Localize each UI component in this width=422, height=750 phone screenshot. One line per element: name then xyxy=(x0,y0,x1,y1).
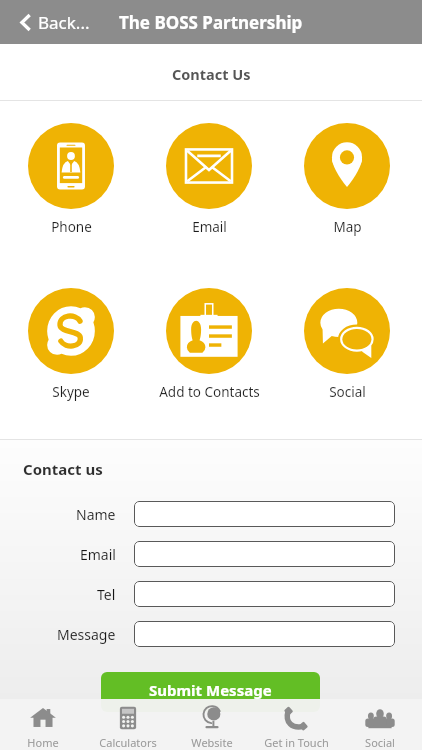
button[interactable]: Email xyxy=(166,123,252,236)
button[interactable]: Social xyxy=(304,288,390,401)
button[interactable] xyxy=(134,541,395,567)
staticText: Message xyxy=(57,625,116,644)
button[interactable]: Map xyxy=(304,123,390,236)
staticText: Social xyxy=(365,735,395,750)
staticText: The BOSS Partnership xyxy=(119,11,303,34)
staticText: Add to Contacts xyxy=(159,383,260,401)
staticText: Social xyxy=(329,383,366,401)
staticText: Email xyxy=(80,545,116,564)
button[interactable]: Home xyxy=(0,699,85,750)
staticText: Map xyxy=(333,218,362,236)
staticText: Contact Us xyxy=(172,64,251,84)
other: Back xyxy=(20,14,31,31)
staticText: Tel xyxy=(97,585,116,604)
button[interactable]: Calculators xyxy=(85,699,170,750)
staticText: Skype xyxy=(52,383,90,401)
button[interactable]: Social xyxy=(338,699,422,750)
staticText: Back... xyxy=(38,11,90,34)
button[interactable]: Add to Contacts xyxy=(166,288,252,401)
button[interactable]: Back xyxy=(0,0,100,44)
button[interactable] xyxy=(134,501,395,527)
button[interactable]: Skype xyxy=(28,288,114,401)
staticText: Phone xyxy=(51,218,92,236)
staticText: Name xyxy=(76,505,116,524)
staticText: Email xyxy=(192,218,227,236)
button[interactable]: Get in Touch xyxy=(254,699,338,750)
button[interactable]: Phone xyxy=(28,123,114,236)
button[interactable]: Website xyxy=(170,699,254,750)
staticText: Website xyxy=(191,735,233,750)
button[interactable]: Submit Message xyxy=(101,672,320,712)
staticText: Contact us xyxy=(23,459,103,479)
staticText: Home xyxy=(27,735,59,750)
staticText: Get in Touch xyxy=(264,735,329,750)
staticText: Submit Message xyxy=(149,680,272,700)
button[interactable] xyxy=(134,621,395,647)
staticText: Calculators xyxy=(99,735,157,750)
button[interactable] xyxy=(134,581,395,607)
